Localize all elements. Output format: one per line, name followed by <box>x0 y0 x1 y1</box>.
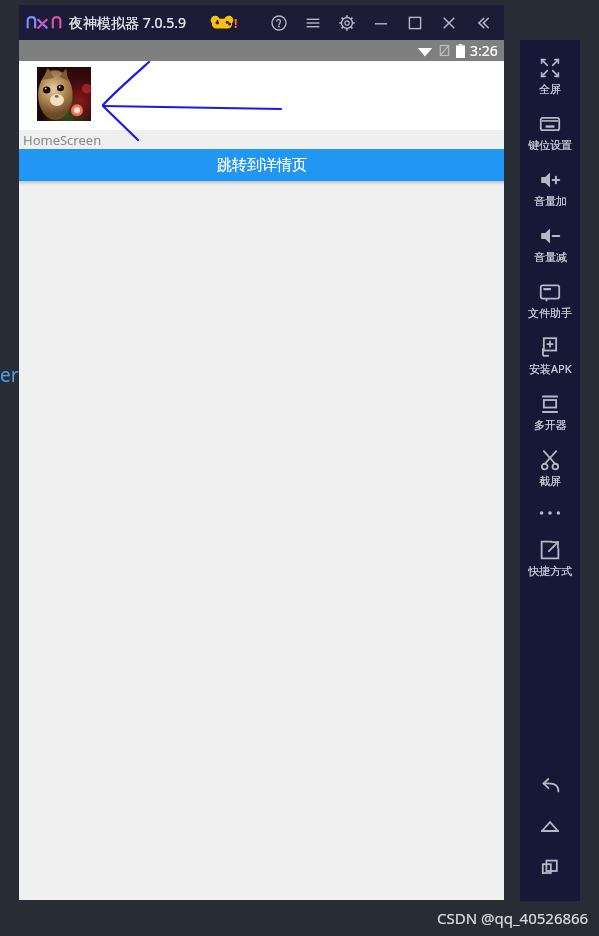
button[interactable]: Menu <box>296 5 330 40</box>
staticText: 文件助手 <box>528 306 572 320</box>
staticText: 跳转到详情页 <box>217 156 307 175</box>
button[interactable]: Maximize <box>398 5 432 40</box>
button[interactable]: 文件助手 <box>520 272 580 328</box>
button[interactable]: More <box>520 496 580 530</box>
button[interactable]: 截屏 <box>520 440 580 496</box>
staticText: 截屏 <box>539 474 561 488</box>
staticText: 多开器 <box>534 418 567 432</box>
button[interactable]: 键位设置 <box>520 104 580 160</box>
staticText: 音量减 <box>534 250 567 264</box>
button[interactable]: Close <box>432 5 466 40</box>
staticText: ! <box>234 15 238 31</box>
button[interactable]: Home <box>520 807 580 847</box>
button[interactable]: Recents <box>520 847 580 887</box>
button[interactable]: 多开器 <box>520 384 580 440</box>
button[interactable]: 跳转到详情页 <box>19 149 504 181</box>
button[interactable]: Collapse <box>466 5 500 40</box>
staticText: 全屏 <box>539 82 561 96</box>
button[interactable]: Settings <box>330 5 364 40</box>
button[interactable]: Help <box>262 5 296 40</box>
staticText: er <box>0 362 19 388</box>
button[interactable]: 音量减 <box>520 216 580 272</box>
staticText: HomeScreen <box>23 131 102 149</box>
button[interactable]: 音量加 <box>520 160 580 216</box>
staticText: 键位设置 <box>528 138 572 152</box>
staticText: CSDN @qq_40526866 <box>437 908 589 928</box>
button[interactable]: Back <box>520 767 580 807</box>
button[interactable]: 快捷方式 <box>520 530 580 586</box>
button[interactable]: Minimize <box>364 5 398 40</box>
staticText: 音量加 <box>534 194 567 208</box>
staticText: 3:26 <box>470 41 498 60</box>
staticText: 安装APK <box>529 361 572 376</box>
button[interactable]: 安装APK <box>520 328 580 384</box>
button[interactable]: 全屏 <box>520 48 580 104</box>
staticText: 快捷方式 <box>528 564 572 578</box>
staticText: 夜神模拟器 7.0.5.9 <box>69 13 186 32</box>
